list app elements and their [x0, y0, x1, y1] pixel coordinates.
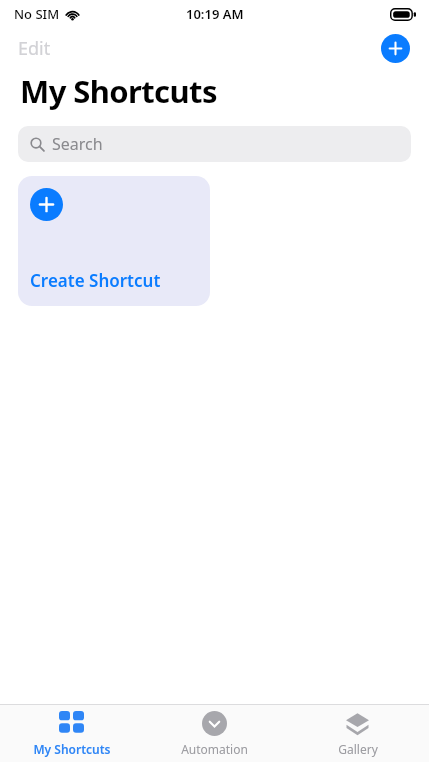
staticText: 10:19 AM	[186, 5, 244, 23]
staticText: Edit	[18, 36, 51, 61]
button[interactable]: Create shortcut	[381, 34, 410, 63]
button[interactable]: Create Shortcut	[18, 176, 210, 306]
staticText: Automation	[181, 741, 248, 757]
staticText: No SIM	[14, 5, 60, 23]
staticText: Gallery	[338, 741, 378, 757]
button[interactable]: My Shortcuts	[0, 705, 143, 762]
button[interactable]: Automation	[143, 705, 286, 762]
staticText: Create Shortcut	[30, 269, 161, 292]
staticText: My Shortcuts	[20, 70, 217, 112]
button[interactable]: Search	[18, 126, 411, 162]
staticText: My Shortcuts	[33, 741, 111, 757]
button[interactable]: Edit	[0, 30, 69, 67]
button[interactable]: Gallery	[286, 705, 429, 762]
staticText: Search	[52, 133, 103, 155]
